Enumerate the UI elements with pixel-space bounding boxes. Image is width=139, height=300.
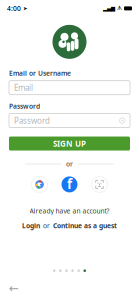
staticText: or: [66, 160, 73, 168]
button[interactable]: SIGN UP: [9, 137, 130, 151]
staticText: Email or Username: [9, 69, 71, 78]
button[interactable]: Continue as a guest: [53, 221, 117, 230]
staticText: ▂▄▆: [103, 5, 115, 11]
staticText: Login: [22, 221, 40, 230]
button[interactable]: Sign up with Facebook: [61, 176, 77, 192]
staticText: Email: [14, 82, 33, 93]
button[interactable]: Back: [6, 282, 22, 294]
button[interactable]: Sign up with Face ID: [91, 176, 107, 192]
staticText: SIGN UP: [53, 138, 86, 149]
button[interactable]: Login: [22, 221, 40, 230]
staticText: Continue as a guest: [53, 221, 117, 230]
staticText: Password: [14, 115, 50, 126]
staticText: ←: [9, 281, 19, 295]
staticText: Password: [9, 102, 40, 111]
staticText: or: [43, 221, 50, 230]
staticText: Already have an account?: [29, 206, 109, 215]
staticText: f: [67, 175, 72, 193]
staticText: 4:00: [7, 4, 21, 13]
button[interactable]: Sign up with Google: [31, 176, 47, 192]
staticText: ᗑ: [117, 6, 122, 11]
staticText: ➤: [23, 5, 27, 11]
